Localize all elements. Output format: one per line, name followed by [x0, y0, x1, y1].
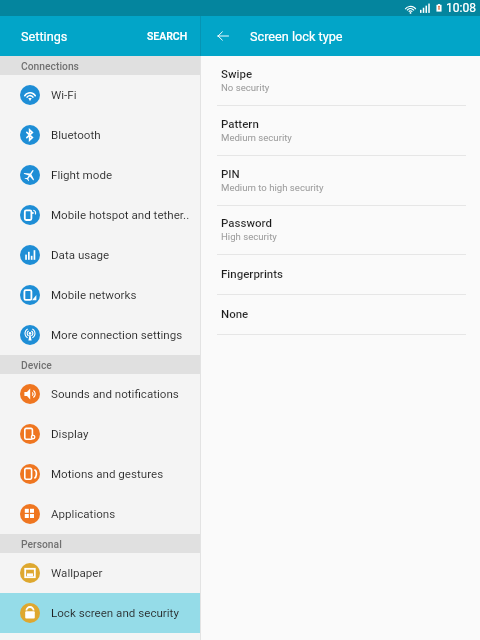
button[interactable]: Display	[0, 414, 200, 454]
button[interactable]: Wi-Fi	[0, 75, 200, 115]
staticText: Swipe	[221, 67, 253, 80]
staticText: Pattern	[221, 117, 259, 130]
staticText: Mobile networks	[51, 288, 137, 302]
button[interactable]: Bluetooth	[0, 115, 200, 155]
button[interactable]: Lock screen and security	[0, 593, 200, 633]
staticText: Flight mode	[51, 168, 113, 182]
staticText: Wallpaper	[51, 566, 103, 580]
button[interactable]: Swipe	[201, 56, 480, 106]
button[interactable]: Mobile hotspot and tether..	[0, 195, 200, 235]
button[interactable]: Wallpaper	[0, 553, 200, 593]
staticText: Lock screen and security	[51, 606, 179, 620]
button[interactable]: PIN	[201, 156, 480, 206]
staticText: Fingerprints	[221, 267, 284, 280]
staticText: Bluetooth	[51, 128, 101, 142]
button[interactable]: More connection settings	[0, 315, 200, 355]
staticText: Sounds and notifications	[51, 387, 179, 401]
button[interactable]: Fingerprints	[201, 255, 480, 295]
button[interactable]: None	[201, 295, 480, 335]
staticText: Motions and gestures	[51, 467, 164, 481]
staticText: PIN	[221, 167, 240, 180]
button[interactable]: Back	[201, 16, 241, 56]
staticText: Settings	[21, 29, 68, 44]
staticText: No security	[221, 82, 270, 93]
staticText: Device	[21, 359, 52, 371]
staticText: Medium to high security	[221, 182, 324, 193]
staticText: Data usage	[51, 248, 110, 262]
staticText: 10:08	[446, 1, 476, 15]
staticText: Mobile hotspot and tether..	[51, 208, 190, 222]
staticText: None	[221, 307, 249, 320]
staticText: More connection settings	[51, 328, 183, 342]
staticText: High security	[221, 231, 277, 242]
staticText: Display	[51, 427, 89, 441]
staticText: Personal	[21, 538, 62, 550]
button[interactable]: Flight mode	[0, 155, 200, 195]
staticText: Medium security	[221, 132, 292, 143]
button[interactable]: Applications	[0, 494, 200, 534]
button[interactable]: SEARCH	[133, 20, 200, 52]
button[interactable]: Mobile networks	[0, 275, 200, 315]
staticText: SEARCH	[147, 30, 188, 42]
button[interactable]: Pattern	[201, 106, 480, 156]
button[interactable]: Password	[201, 206, 480, 255]
staticText: Connections	[21, 60, 79, 72]
staticText: Applications	[51, 507, 116, 521]
staticText: Password	[221, 216, 272, 229]
button[interactable]: Data usage	[0, 235, 200, 275]
button[interactable]: Sounds and notifications	[0, 374, 200, 414]
staticText: Screen lock type	[250, 29, 343, 44]
staticText: Wi-Fi	[51, 88, 77, 102]
button[interactable]: Motions and gestures	[0, 454, 200, 494]
